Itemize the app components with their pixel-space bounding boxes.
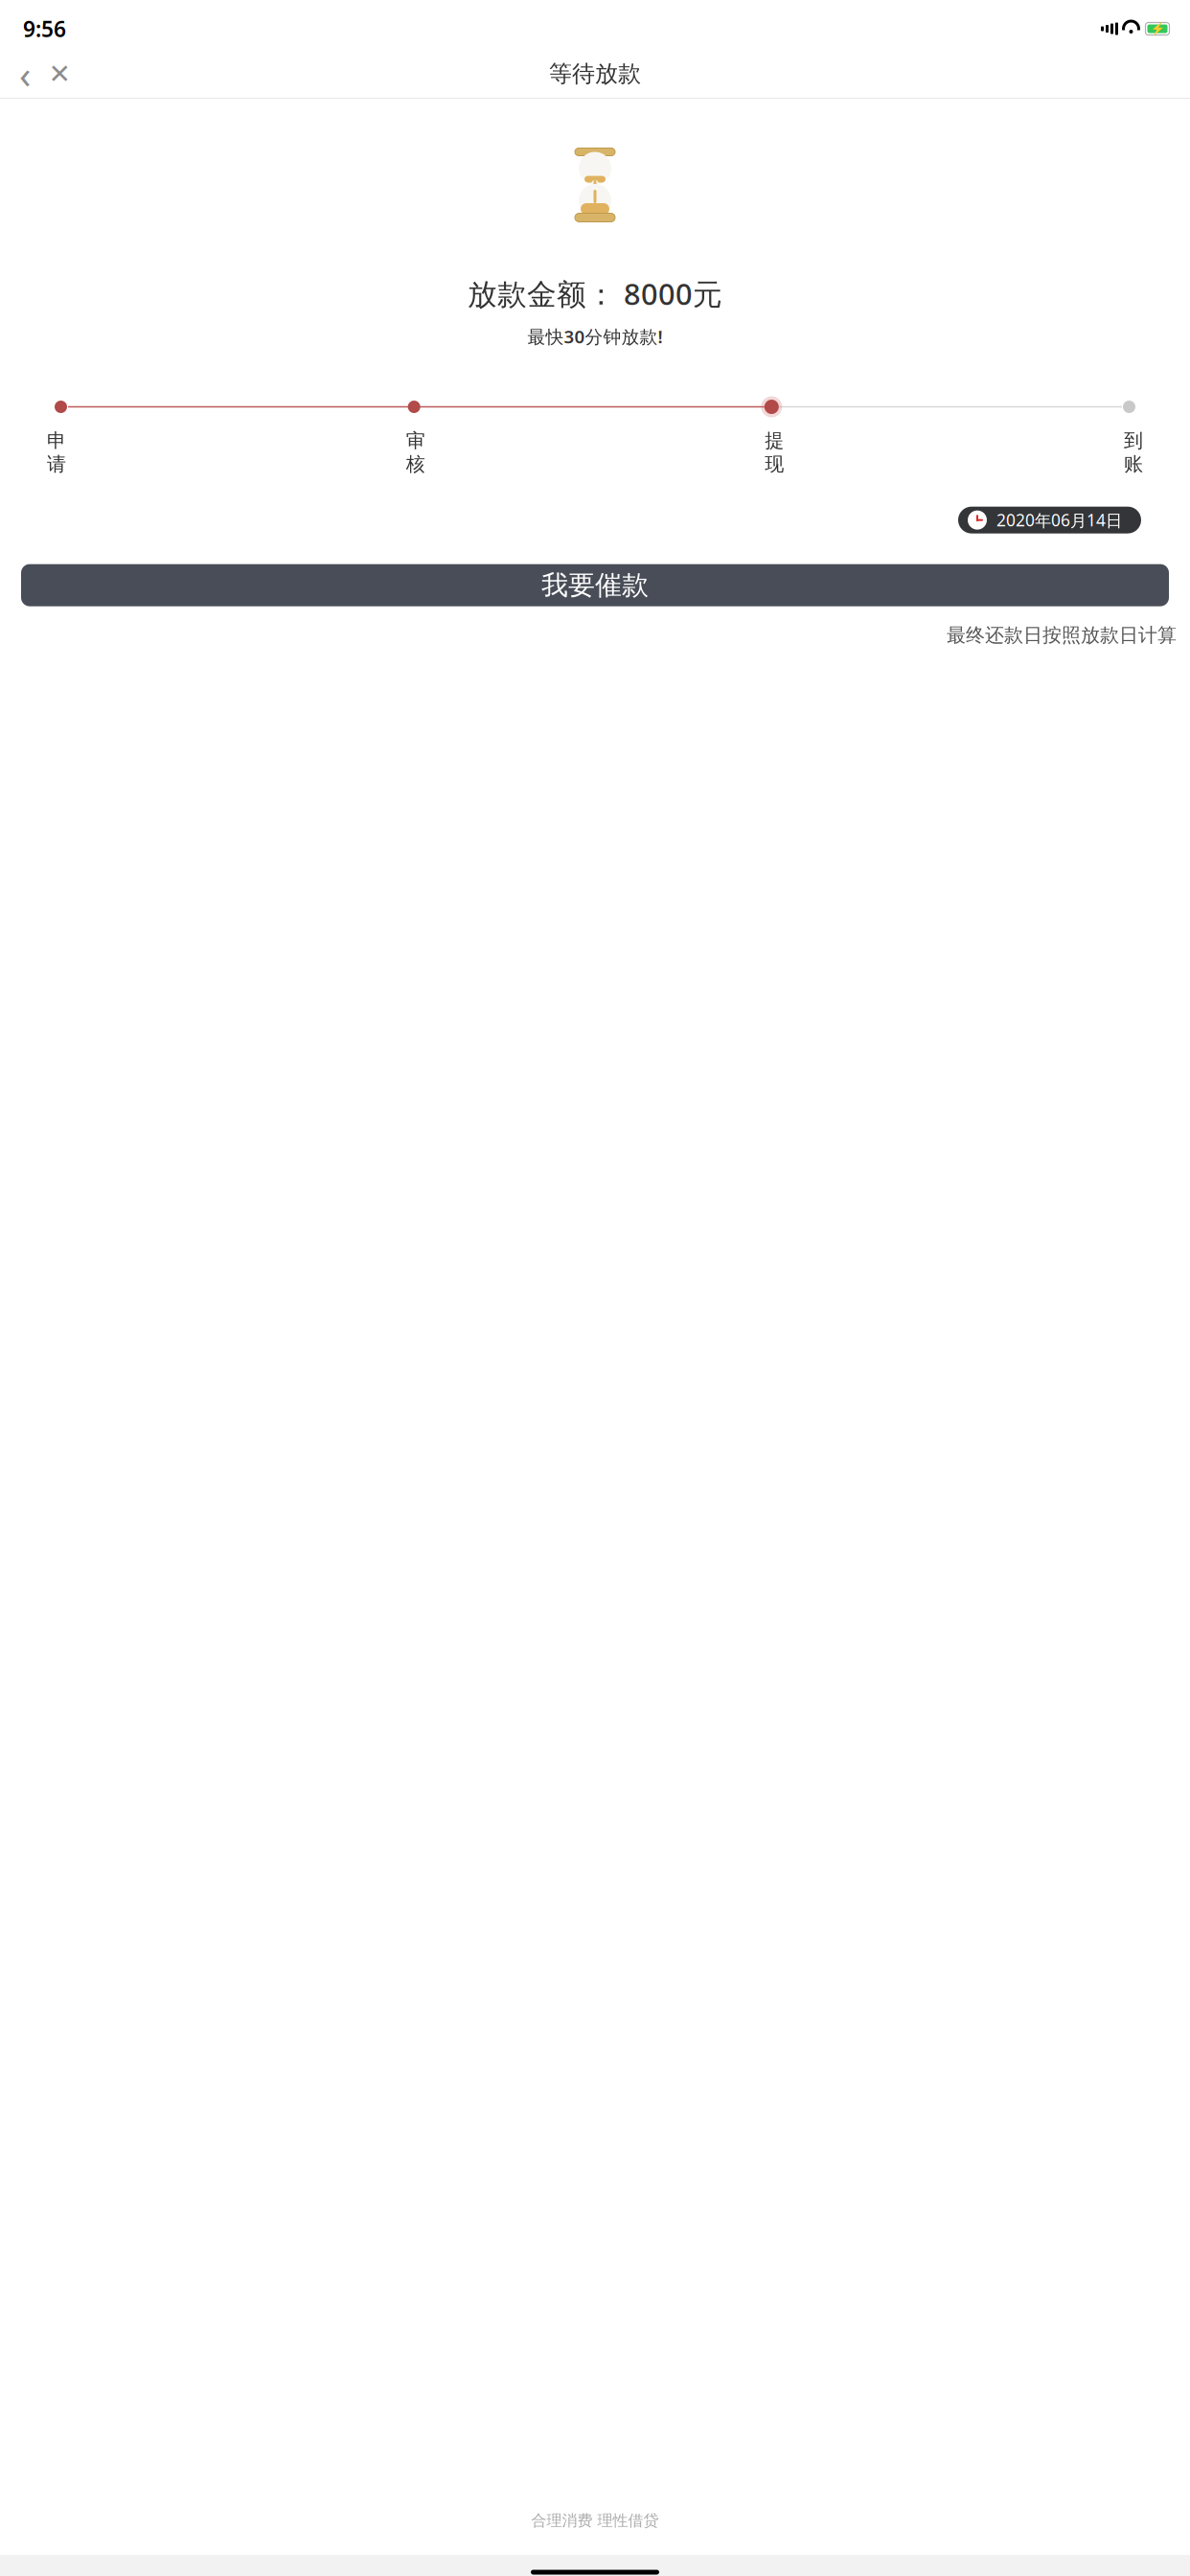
- staticText: 到账: [1124, 429, 1143, 476]
- staticText: ✕: [48, 59, 70, 89]
- staticText: 2020年06月14日: [996, 509, 1122, 531]
- staticText: 放款金额： 8000元: [468, 274, 722, 313]
- staticText: 我要催款: [541, 569, 649, 602]
- staticText: 最快30分钟放款!: [527, 325, 663, 348]
- button[interactable]: Back: [8, 53, 42, 95]
- staticText: 9:56: [23, 14, 66, 43]
- staticText: ⚡: [1150, 22, 1165, 35]
- staticText: 合理消费 理性借贷: [531, 2511, 659, 2530]
- staticText: 审核: [406, 429, 425, 476]
- staticText: ‹: [19, 48, 31, 99]
- staticText: 等待放款: [549, 60, 641, 88]
- button[interactable]: 我要催款: [21, 564, 1169, 606]
- staticText: 申请: [47, 429, 66, 476]
- staticText: 最终还款日按照放款日计算: [947, 623, 1177, 647]
- staticText: 提现: [765, 429, 784, 476]
- button[interactable]: Close: [42, 53, 77, 95]
